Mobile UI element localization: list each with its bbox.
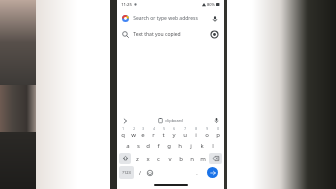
button[interactable]: 3 [138, 126, 148, 139]
staticText: k [200, 142, 204, 150]
staticText: w [131, 131, 136, 139]
button[interactable]: b [175, 152, 186, 165]
other: Backspace [213, 156, 219, 161]
staticText: / [139, 169, 141, 176]
button[interactable]: ?123 [119, 166, 134, 179]
staticText: 4 [153, 127, 155, 131]
button[interactable]: m [197, 152, 208, 165]
button[interactable]: 1 [118, 126, 128, 139]
staticText: ?123 [122, 170, 131, 175]
staticText: 8 [195, 127, 197, 131]
staticText: s [137, 142, 140, 150]
button[interactable]: d [143, 139, 153, 152]
button[interactable]: Shift [119, 153, 131, 164]
staticText: 0 [217, 127, 219, 131]
staticText: m [200, 155, 206, 163]
staticText: f [157, 142, 160, 150]
staticText: y [172, 131, 176, 139]
staticText: q [121, 131, 125, 139]
staticText: t [162, 131, 165, 139]
button[interactable]: 4 [148, 126, 158, 139]
button[interactable]: 0 [212, 126, 223, 139]
staticText: g [167, 142, 171, 150]
button[interactable]: 9 [201, 126, 212, 139]
button[interactable]: clipboard [158, 118, 183, 123]
button[interactable]: Text that you copied [117, 26, 224, 42]
other: Shift [123, 156, 128, 161]
button[interactable]: f [153, 139, 163, 152]
button[interactable]: z [132, 152, 142, 165]
staticText: Search or type web address [133, 15, 198, 22]
staticText: c [157, 155, 160, 163]
staticText: r [152, 131, 155, 139]
staticText: v [168, 155, 172, 163]
staticText: i [195, 131, 197, 139]
staticText: 80% [207, 2, 215, 7]
button[interactable]: v [164, 152, 175, 165]
staticText: z [136, 155, 139, 163]
staticText: . [196, 169, 198, 176]
button[interactable]: c [153, 152, 164, 165]
staticText: n [190, 155, 194, 163]
staticText: 1 [122, 127, 124, 131]
button[interactable]: n [186, 152, 197, 165]
staticText: 5 [163, 127, 165, 131]
staticText: o [205, 131, 209, 139]
button[interactable]: g [163, 139, 174, 152]
button[interactable]: Voice input [213, 117, 220, 124]
staticText: b [179, 155, 183, 163]
staticText: x [146, 155, 150, 163]
button[interactable]: s [133, 139, 143, 152]
button[interactable]: l [207, 139, 218, 152]
staticText: l [212, 142, 214, 150]
staticText: 3 [142, 127, 144, 131]
staticText: p [216, 131, 220, 139]
staticText: Text that you copied [133, 31, 181, 38]
button[interactable]: Search or type web address [117, 10, 224, 26]
staticText: 11:25 [121, 2, 132, 8]
staticText: h [178, 142, 182, 150]
staticText: 2 [133, 127, 135, 131]
staticText: a [126, 142, 130, 150]
button[interactable]: 7 [179, 126, 190, 139]
button[interactable]: j [185, 139, 196, 152]
button[interactable]: Emoji [145, 165, 155, 180]
staticText: j [190, 142, 192, 150]
button[interactable]: 5 [158, 126, 168, 139]
button[interactable]: a [123, 139, 133, 152]
staticText: 7 [184, 127, 186, 131]
button[interactable]: k [196, 139, 207, 152]
button[interactable]: 8 [190, 126, 201, 139]
button[interactable]: x [142, 152, 153, 165]
button[interactable]: Backspace [209, 153, 222, 164]
button[interactable]: h [174, 139, 185, 152]
staticText: u [183, 131, 187, 139]
button[interactable]: 6 [168, 126, 179, 139]
staticText: 9 [206, 127, 208, 131]
button[interactable]: Lens search [210, 30, 219, 39]
button[interactable]: / [135, 165, 145, 180]
staticText: clipboard [165, 118, 183, 123]
staticText: e [141, 131, 145, 139]
staticText: d [146, 142, 150, 150]
staticText: 6 [173, 127, 175, 131]
button[interactable]: Go [203, 166, 222, 179]
button[interactable]: Expand toolbar [121, 117, 128, 124]
button[interactable]: . [192, 165, 202, 180]
button[interactable]: Voice search [210, 14, 219, 23]
button[interactable]: 2 [128, 126, 138, 139]
